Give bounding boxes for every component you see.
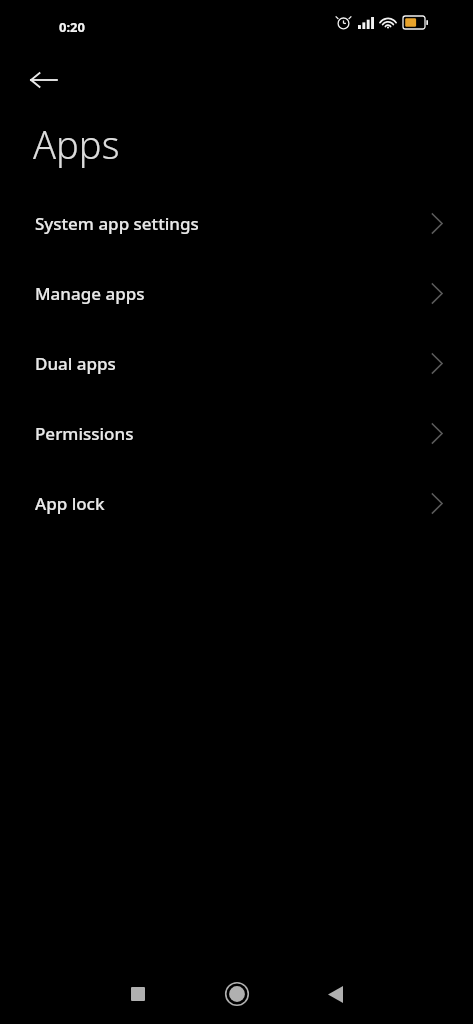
staticText: Manage apps — [35, 282, 145, 305]
staticText: Apps — [33, 118, 120, 170]
button[interactable]: Back — [22, 58, 66, 102]
button[interactable]: Recent apps — [114, 970, 162, 1018]
staticText: App lock — [35, 492, 105, 515]
staticText: System app settings — [35, 212, 199, 235]
button[interactable]: Home — [213, 970, 261, 1018]
staticText: Dual apps — [35, 352, 116, 375]
button[interactable]: Permissions — [0, 398, 473, 468]
button[interactable]: Back — [311, 970, 359, 1018]
button[interactable]: Dual apps — [0, 328, 473, 398]
staticText: Permissions — [35, 422, 134, 445]
button[interactable]: App lock — [0, 468, 473, 538]
button[interactable]: Manage apps — [0, 258, 473, 328]
staticText: 0:20 — [59, 18, 85, 36]
button[interactable]: System app settings — [0, 188, 473, 258]
